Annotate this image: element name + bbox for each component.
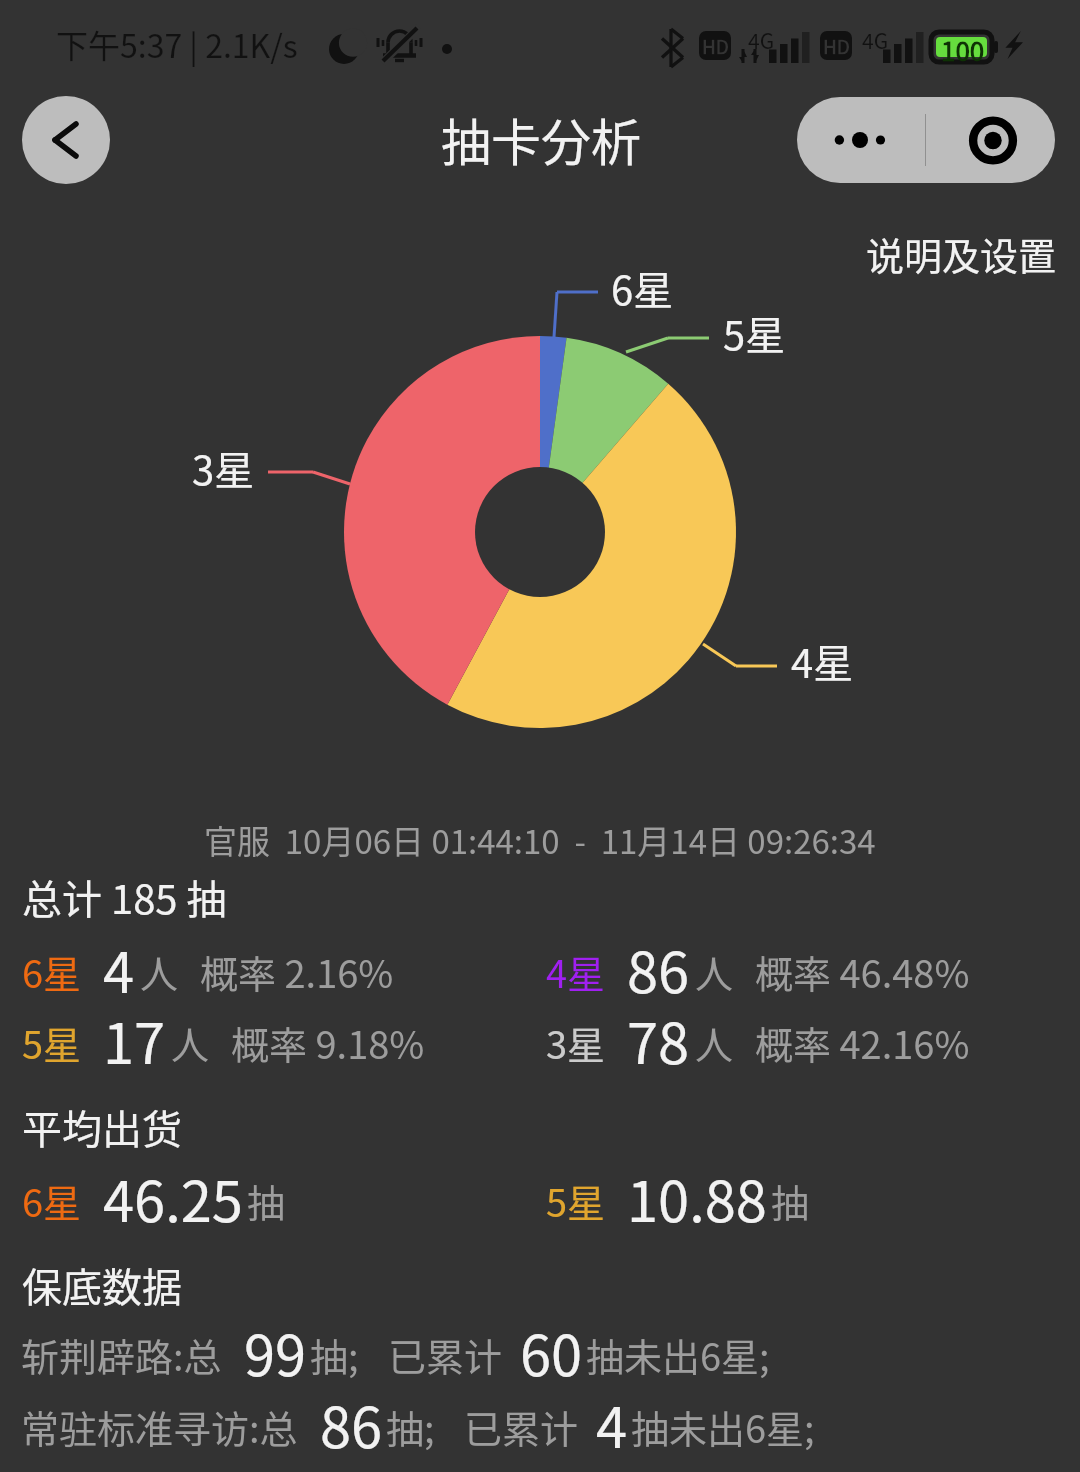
staticText: 抽 xyxy=(247,1173,286,1228)
staticText: 4 xyxy=(103,928,135,1009)
button[interactable]: More options xyxy=(797,97,926,183)
staticText: 4G xyxy=(748,25,775,55)
staticText: 保底数据 xyxy=(22,1256,182,1314)
staticText: 5星 xyxy=(723,304,786,362)
staticText: 抽; xyxy=(310,1327,359,1382)
staticText: 下午5:37 | 2.1K/s xyxy=(56,21,298,67)
staticText: 86 xyxy=(320,1383,383,1464)
staticText: 抽未出6星; xyxy=(586,1327,770,1382)
staticText: 6星 xyxy=(22,944,82,999)
staticText: 78 xyxy=(627,999,690,1080)
staticText: 60 xyxy=(520,1311,583,1392)
staticText: 6星 xyxy=(611,259,674,317)
staticText: 概率 42.16% xyxy=(755,1015,970,1070)
staticText: 6星 xyxy=(22,1173,82,1228)
staticText: HD xyxy=(702,32,729,60)
staticText: 86 xyxy=(627,928,690,1009)
staticText: 46.25 xyxy=(103,1157,243,1238)
staticText: 人 xyxy=(171,1015,210,1070)
button[interactable]: Back xyxy=(22,96,110,184)
staticText: 斩荆辟路:总 xyxy=(21,1327,222,1382)
staticText: 概率 9.18% xyxy=(231,1015,425,1070)
staticText: 人 xyxy=(695,1015,734,1070)
staticText: 4星 xyxy=(791,632,854,690)
staticText: 抽未出6星; xyxy=(631,1399,815,1454)
staticText: 17 xyxy=(103,999,166,1080)
staticText: 总计 185 抽 xyxy=(22,868,227,926)
staticText: 平均出货 xyxy=(22,1098,182,1156)
staticText: 3星 xyxy=(546,1015,606,1070)
staticText: 5星 xyxy=(546,1173,606,1228)
staticText: 100 xyxy=(941,31,985,69)
staticText: 5星 xyxy=(22,1015,82,1070)
staticText: 3星 xyxy=(192,439,255,497)
staticText: 常驻标准寻访:总 xyxy=(21,1399,298,1454)
staticText: 抽 xyxy=(771,1173,810,1228)
staticText: 概率 2.16% xyxy=(200,944,394,999)
staticText: 4星 xyxy=(546,944,606,999)
staticText: 抽; xyxy=(386,1399,435,1454)
button[interactable]: 说明及设置 xyxy=(856,223,1068,283)
button[interactable]: Close mini program xyxy=(926,97,1055,183)
staticText: 4 xyxy=(596,1383,628,1464)
staticText: 已累计 xyxy=(464,1399,579,1454)
staticText: 说明及设置 xyxy=(866,226,1057,281)
staticText: 10.88 xyxy=(627,1157,767,1238)
staticText: 官服 10月06日 01:44:10 - 11月14日 09:26:34 xyxy=(204,816,876,864)
staticText: 已累计 xyxy=(388,1327,503,1382)
staticText: 人 xyxy=(140,944,179,999)
staticText: HD xyxy=(823,32,850,60)
staticText: 4G xyxy=(862,25,889,55)
staticText: 人 xyxy=(695,944,734,999)
staticText: 99 xyxy=(244,1311,307,1392)
staticText: 抽卡分析 xyxy=(441,103,641,175)
staticText: 概率 46.48% xyxy=(755,944,970,999)
